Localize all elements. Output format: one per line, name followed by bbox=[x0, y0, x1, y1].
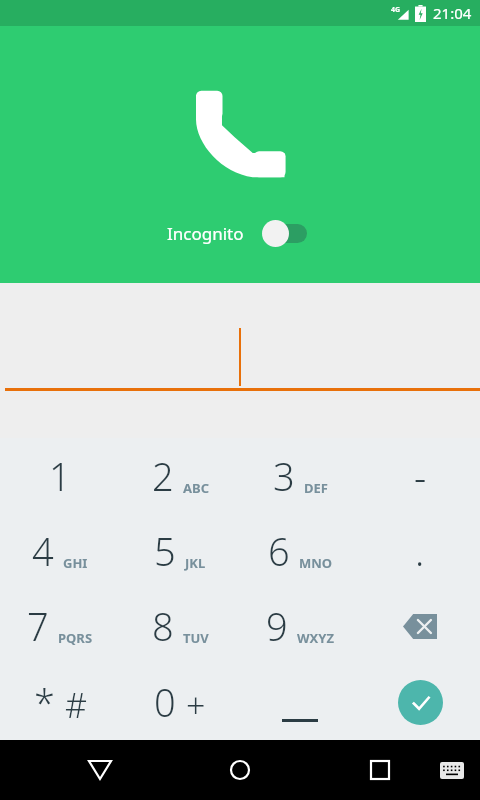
button[interactable]: Incognito toggle bbox=[262, 218, 314, 248]
staticText: 9 bbox=[266, 600, 288, 652]
staticText: 6 bbox=[268, 525, 290, 577]
button[interactable]: Confirm bbox=[360, 664, 480, 740]
staticText: 1 bbox=[49, 450, 71, 502]
button[interactable]: 2 bbox=[120, 438, 240, 513]
staticText: + bbox=[186, 682, 206, 728]
button[interactable]: . bbox=[360, 513, 480, 588]
button[interactable]: Home bbox=[216, 746, 264, 794]
staticText: 3 bbox=[273, 450, 295, 502]
button[interactable]: 0 bbox=[120, 664, 240, 740]
button[interactable]: - bbox=[360, 438, 480, 513]
staticText: Incognito bbox=[167, 222, 244, 245]
staticText: TUV bbox=[183, 629, 209, 647]
staticText: DEF bbox=[304, 479, 328, 497]
button[interactable]: * bbox=[0, 664, 120, 740]
button[interactable]: 8 bbox=[120, 588, 240, 664]
button[interactable]: 4 bbox=[0, 513, 120, 588]
staticText: . bbox=[415, 525, 425, 577]
staticText: MNO bbox=[299, 554, 333, 572]
staticText: 0 bbox=[154, 676, 176, 728]
staticText: 2 bbox=[152, 450, 174, 502]
staticText: - bbox=[414, 450, 427, 502]
button[interactable]: 5 bbox=[120, 513, 240, 588]
staticText: JKL bbox=[185, 554, 206, 572]
staticText: ABC bbox=[183, 479, 209, 497]
staticText: WXYZ bbox=[297, 629, 334, 647]
button[interactable]: Recent apps bbox=[356, 746, 404, 794]
button[interactable]: 9 bbox=[240, 588, 360, 664]
button[interactable]: 7 bbox=[0, 588, 120, 664]
staticText: GHI bbox=[63, 554, 88, 572]
staticText: * bbox=[34, 676, 55, 728]
button[interactable]: 1 bbox=[0, 438, 120, 513]
button[interactable]: 3 bbox=[240, 438, 360, 513]
staticText: 4 bbox=[32, 525, 54, 577]
staticText: 5 bbox=[154, 525, 176, 577]
staticText: 4G bbox=[391, 5, 401, 15]
staticText: 21:04 bbox=[433, 3, 472, 23]
staticText: 8 bbox=[152, 600, 174, 652]
staticText: PQRS bbox=[58, 629, 93, 647]
staticText: 7 bbox=[27, 600, 49, 652]
staticText: # bbox=[65, 682, 87, 728]
button[interactable]: Backspace bbox=[360, 588, 480, 664]
button[interactable]: Switch keyboard bbox=[430, 748, 474, 792]
button[interactable]: Back bbox=[76, 746, 124, 794]
button[interactable]: 6 bbox=[240, 513, 360, 588]
button[interactable]: Space bbox=[240, 664, 360, 740]
